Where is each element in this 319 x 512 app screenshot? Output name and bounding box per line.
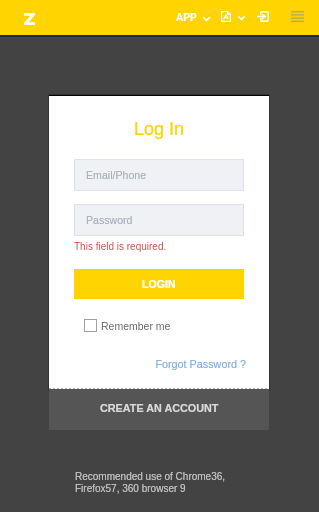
staticText: Recommended use of Chrome36, Firefox57, … <box>75 471 226 494</box>
button[interactable]: CREATE AN ACCOUNT <box>49 389 269 430</box>
staticText: Email/Phone <box>86 169 147 181</box>
button[interactable]: Password <box>74 204 244 236</box>
button[interactable]: Forgot Password ? <box>49 358 246 370</box>
button[interactable]: APP <box>176 12 210 23</box>
staticText: This field is required. <box>74 241 167 252</box>
button[interactable]: Menu <box>291 11 304 22</box>
staticText: LOGIN <box>142 278 176 290</box>
button[interactable]: Remember me <box>84 319 171 332</box>
staticText: Remember me <box>101 320 171 332</box>
staticText: CREATE AN ACCOUNT <box>100 402 219 414</box>
button[interactable]: Email/Phone <box>74 159 244 191</box>
staticText: APP <box>176 12 197 23</box>
button[interactable]: Home <box>24 13 35 25</box>
staticText: Password <box>86 214 133 226</box>
button[interactable]: LOGIN <box>74 269 244 299</box>
button[interactable]: Download PDF <box>221 11 245 22</box>
staticText: Log In <box>49 119 269 139</box>
button[interactable]: Log in <box>257 11 269 22</box>
